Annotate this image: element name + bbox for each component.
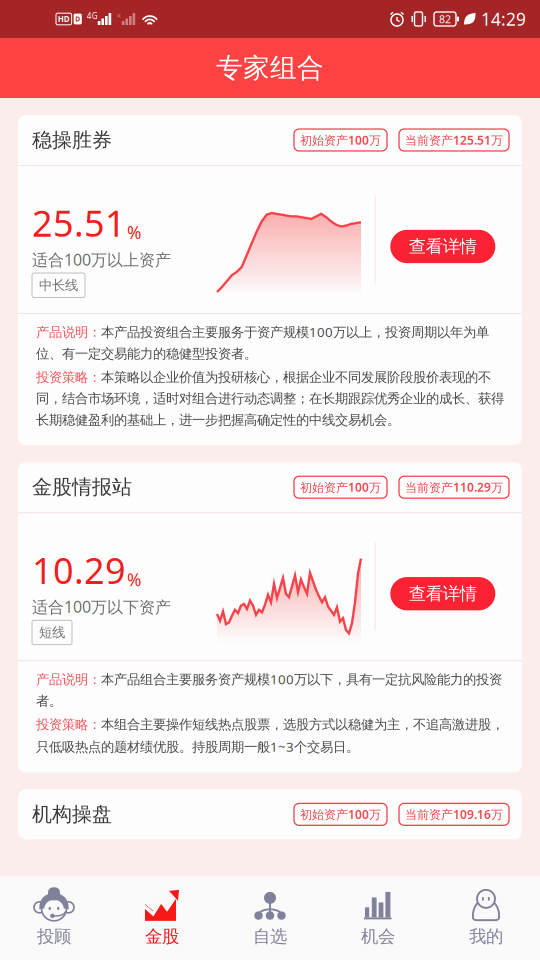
staticText: 专家组合 <box>216 52 324 84</box>
staticText: 14:29 <box>481 7 526 30</box>
staticText: 稳操胜券 <box>32 128 112 152</box>
staticText: 机构操盘 <box>32 802 112 827</box>
staticText: 投顾 <box>37 926 71 947</box>
staticText: 投资策略：本策略以企业价值为投研核心，根据企业不同发展阶段股价表现的不同，结合市… <box>36 369 504 428</box>
staticText: 中长线 <box>39 277 78 293</box>
staticText: 4G <box>87 11 98 21</box>
button[interactable]: 自选 <box>216 876 324 960</box>
staticText: 初始资产100万 <box>300 479 381 495</box>
staticText: 25.51 <box>32 199 126 247</box>
staticText: 金股情报站 <box>32 475 132 499</box>
staticText: × <box>117 11 122 21</box>
staticText: 金股 <box>145 926 179 947</box>
staticText: 查看详情 <box>409 236 477 257</box>
staticText: % <box>127 568 141 591</box>
staticText: 投资策略：本组合主要操作短线热点股票，选股方式以稳健为主，不追高激进股，只低吸热… <box>36 716 504 755</box>
staticText: 机会 <box>361 926 395 947</box>
staticText: HD <box>58 14 70 24</box>
staticText: 产品说明：本产品投资组合主要服务于资产规模100万以上，投资周期以年为单位、有一… <box>36 323 489 362</box>
button[interactable]: 机会 <box>324 876 432 960</box>
staticText: D <box>75 15 80 23</box>
staticText: 查看详情 <box>409 583 477 604</box>
staticText: 适合100万以下资产 <box>32 596 171 617</box>
staticText: % <box>127 221 141 244</box>
staticText: 适合100万以上资产 <box>32 249 171 270</box>
staticText: 当前资产125.51万 <box>405 132 503 148</box>
staticText: 10.29 <box>32 546 126 594</box>
staticText: 当前资产110.29万 <box>405 479 503 495</box>
button[interactable]: 投顾 <box>0 876 108 960</box>
staticText: 短线 <box>39 624 65 641</box>
staticText: 初始资产100万 <box>300 132 381 148</box>
staticText: 82 <box>439 12 451 26</box>
staticText: 初始资产100万 <box>300 806 381 822</box>
staticText: 自选 <box>253 926 287 947</box>
button[interactable]: 查看详情 <box>390 563 495 610</box>
button[interactable]: 金股 <box>108 876 216 960</box>
staticText: 我的 <box>469 926 503 947</box>
staticText: 产品说明：本产品组合主要服务资产规模100万以下，具有一定抗风险能力的投资者。 <box>36 670 502 709</box>
staticText: 当前资产109.16万 <box>405 806 503 822</box>
button[interactable]: 查看详情 <box>390 216 495 263</box>
button[interactable]: 我的 <box>432 876 540 960</box>
